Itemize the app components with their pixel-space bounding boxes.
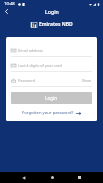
button[interactable]: Recents xyxy=(74,172,85,183)
button[interactable]: Back xyxy=(0,5,13,18)
staticText: Login xyxy=(45,8,59,15)
staticText: 10:48 xyxy=(4,1,15,7)
staticText: Emirates NBD xyxy=(39,21,73,28)
staticText: Last 4 digits of your card xyxy=(18,63,62,68)
button[interactable]: Home xyxy=(47,172,58,183)
button[interactable]: Forgotten your password? xyxy=(11,110,92,116)
staticText: Email address xyxy=(18,48,43,53)
button[interactable]: Show xyxy=(82,78,92,83)
button[interactable]: Login xyxy=(11,92,92,104)
staticText: Forgotten your password? xyxy=(22,110,74,116)
staticText: Password xyxy=(18,78,36,83)
staticText: Login xyxy=(45,95,58,101)
button[interactable]: Back xyxy=(18,172,29,183)
